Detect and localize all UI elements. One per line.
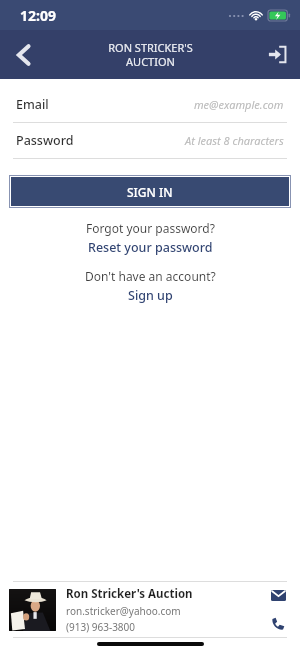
staticText: Email	[16, 96, 49, 113]
staticText: (913) 963-3800	[66, 620, 136, 634]
staticText: At least 8 characters	[185, 133, 284, 148]
button[interactable]: Ron Stricker's Auction	[0, 582, 300, 637]
button[interactable]: SIGN IN	[11, 177, 289, 206]
staticText: Password	[16, 132, 74, 149]
button[interactable]: Sign in	[254, 30, 300, 79]
button[interactable]: Email	[0, 87, 300, 123]
button[interactable]: Back	[0, 30, 48, 79]
staticText: RON STRICKER'S AUCTION	[108, 40, 193, 69]
button[interactable]: Call	[265, 611, 291, 637]
button[interactable]: Sign up	[122, 286, 179, 305]
button[interactable]: Reset your password	[82, 238, 219, 257]
button[interactable]: Email	[265, 582, 291, 608]
staticText: me@example.com	[194, 97, 284, 112]
staticText: Reset your password	[88, 239, 213, 256]
staticText: Sign up	[128, 287, 173, 304]
staticText: 12:09	[20, 6, 56, 25]
staticText: Don't have an account?	[85, 268, 216, 284]
staticText: SIGN IN	[127, 184, 173, 200]
button[interactable]: Password	[0, 123, 300, 159]
staticText: ron.stricker@yahoo.com	[66, 604, 181, 618]
staticText: Forgot your password?	[86, 220, 215, 236]
staticText: Ron Stricker's Auction	[66, 586, 193, 602]
